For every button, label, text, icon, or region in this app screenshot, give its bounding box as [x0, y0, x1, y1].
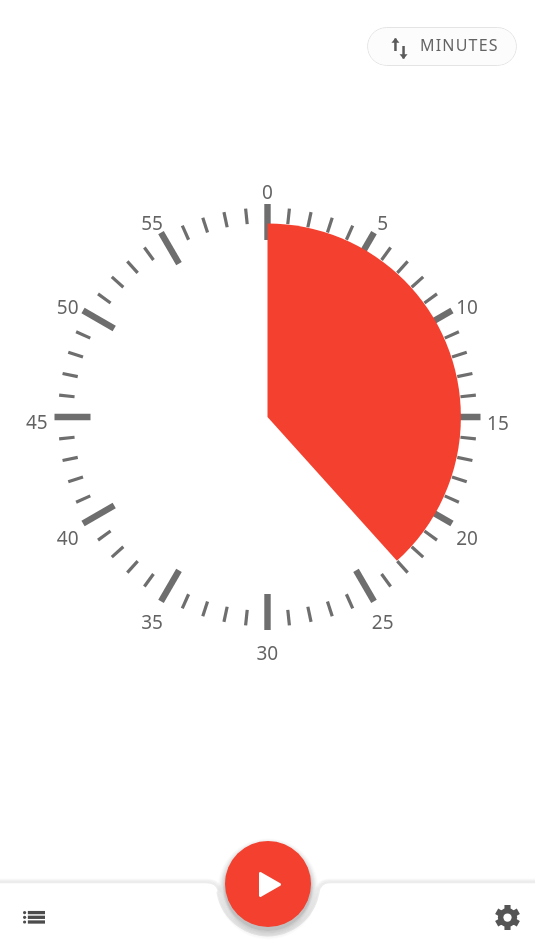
- button[interactable]: Settings: [484, 894, 530, 940]
- button[interactable]: Presets: [11, 894, 57, 940]
- button[interactable]: MINUTES: [367, 27, 517, 66]
- button[interactable]: Start: [225, 841, 311, 927]
- staticText: MINUTES: [420, 34, 499, 56]
